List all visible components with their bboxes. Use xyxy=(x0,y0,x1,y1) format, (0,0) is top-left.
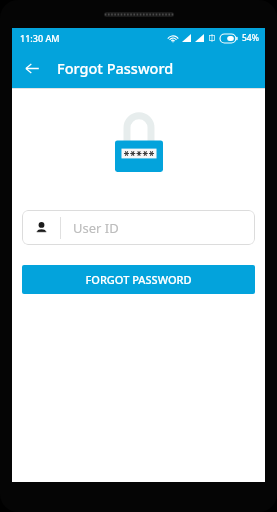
button[interactable]: User ID xyxy=(22,210,255,245)
staticText: User ID xyxy=(73,219,119,237)
staticText: 54% xyxy=(242,32,259,44)
staticText: 11:30 AM xyxy=(20,32,60,44)
button[interactable]: FORGOT PASSWORD xyxy=(22,265,255,294)
staticText: Forgot Password xyxy=(57,58,174,78)
staticText: FORGOT PASSWORD xyxy=(85,272,192,287)
button[interactable]: Back xyxy=(17,53,47,83)
